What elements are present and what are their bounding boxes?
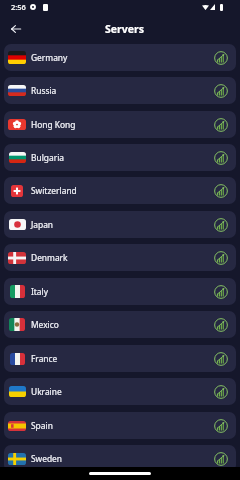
button[interactable]: Spain: [4, 412, 236, 439]
button[interactable]: Germany: [4, 44, 236, 71]
staticText: Germany: [31, 52, 68, 63]
staticText: Hong Kong: [31, 119, 76, 130]
button[interactable]: Bulgaria: [4, 144, 236, 171]
button[interactable]: France: [4, 345, 236, 372]
staticText: Ukraine: [31, 386, 62, 397]
staticText: Japan: [31, 219, 54, 230]
staticText: Servers: [105, 22, 144, 36]
button[interactable]: Japan: [4, 211, 236, 238]
staticText: France: [31, 353, 58, 364]
staticText: 2:56: [11, 2, 26, 12]
staticText: Switzerland: [31, 185, 77, 196]
button[interactable]: Mexico: [4, 311, 236, 338]
button[interactable]: Ukraine: [4, 378, 236, 405]
button[interactable]: Hong Kong: [4, 111, 236, 138]
staticText: Sweden: [31, 453, 63, 464]
button[interactable]: Switzerland: [4, 177, 236, 204]
button[interactable]: Denmark: [4, 244, 236, 271]
staticText: Mexico: [31, 319, 59, 330]
button[interactable]: Russia: [4, 77, 236, 104]
button[interactable]: Italy: [4, 278, 236, 305]
button[interactable]: Back: [7, 20, 25, 38]
staticText: Russia: [31, 85, 57, 96]
staticText: Spain: [31, 420, 53, 431]
staticText: Bulgaria: [31, 152, 65, 163]
button[interactable]: Sweden: [4, 445, 236, 472]
staticText: Italy: [31, 286, 49, 297]
staticText: Denmark: [31, 252, 68, 263]
